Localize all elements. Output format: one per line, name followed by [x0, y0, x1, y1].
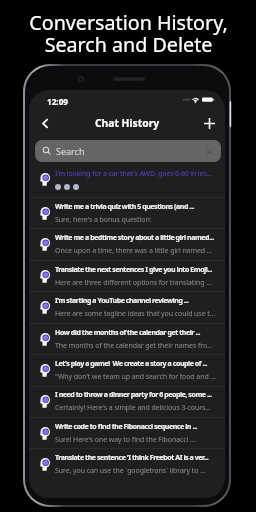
button[interactable]: Search [35, 140, 221, 162]
staticText: Here are some tagline ideas that you cou… [55, 309, 216, 319]
button[interactable]: Translate the next sentences I give you … [29, 261, 225, 292]
staticText: Sure, here's a bonus question: [55, 215, 152, 225]
staticText: Translate the sentence 'I think Freebot … [55, 453, 209, 463]
staticText: Write code to find the Fibonacci sequenc… [55, 422, 198, 432]
staticText: Certainly! Here's a simple and delicious… [55, 403, 211, 413]
button[interactable]: Translate the sentence 'I think Freebot … [29, 449, 225, 480]
staticText: I need to throw a dinner party for 6 peo… [55, 390, 212, 400]
staticText: I'm looking for a car that's AWD, goes 0… [55, 169, 212, 179]
button[interactable]: New chat [200, 114, 218, 132]
staticText: Translate the next sentences I give you … [55, 265, 213, 275]
button[interactable]: Write me a bedtime story about a little … [29, 229, 225, 260]
staticText: Sure! Here's one way to find the Fibonac… [55, 435, 196, 445]
staticText: The months of the calendar get their nam… [55, 341, 213, 351]
staticText: 12:09 [47, 96, 69, 107]
button[interactable]: Back [36, 114, 54, 132]
staticText: Conversation History, Search and Delete [29, 9, 228, 58]
staticText: Here are three different options for tra… [55, 278, 212, 288]
staticText: "Why don't we team up and search for foo… [55, 372, 216, 382]
staticText: Search [56, 145, 85, 157]
button[interactable]: Let's play a game! We create a story a c… [29, 355, 225, 386]
button[interactable]: How did the months of the calendar get t… [29, 324, 225, 355]
staticText: Sure, you can use the `googletrans` libr… [55, 466, 206, 476]
staticText: Write me a trivia quiz with 5 questions … [55, 202, 194, 212]
staticText: How did the months of the calendar get t… [55, 328, 201, 338]
staticText: I'm starting a YouTube channel reviewing… [55, 296, 189, 306]
button[interactable]: I need to throw a dinner party for 6 peo… [29, 386, 225, 417]
button[interactable]: Write code to find the Fibonacci sequenc… [29, 418, 225, 449]
button[interactable]: I'm looking for a car that's AWD, goes 0… [29, 162, 225, 197]
button[interactable]: I'm starting a YouTube channel reviewing… [29, 292, 225, 323]
button[interactable]: Write me a trivia quiz with 5 questions … [29, 198, 225, 229]
staticText: Once upon a time, there was a little gir… [55, 246, 213, 256]
staticText: Write me a bedtime story about a little … [55, 233, 214, 243]
staticText: Let's play a game! We create a story a c… [55, 359, 208, 369]
staticText: Chat History [95, 116, 160, 130]
